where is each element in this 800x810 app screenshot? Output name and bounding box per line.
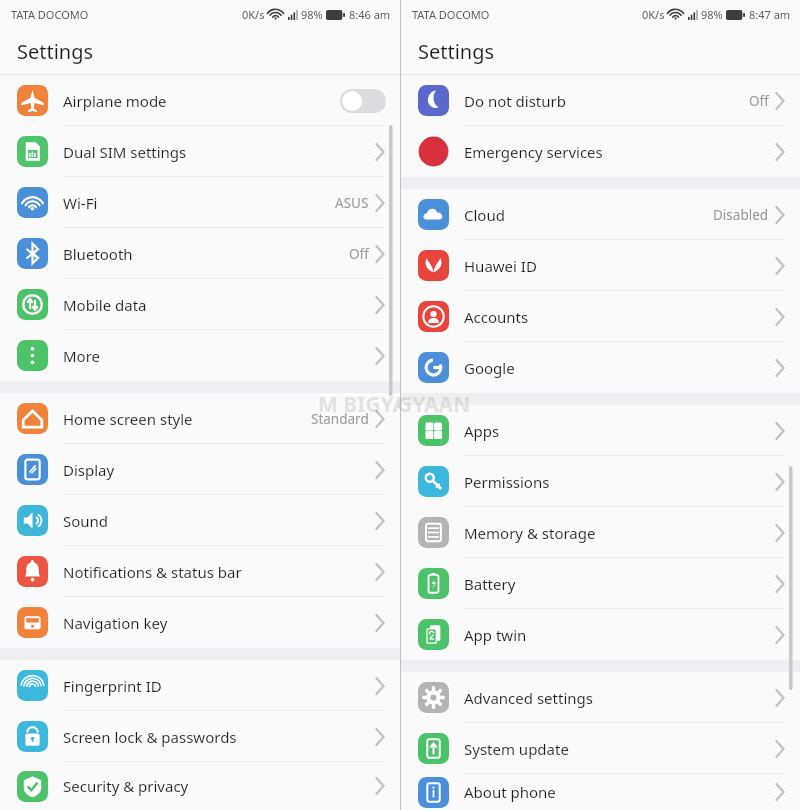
staticText: Notifications & status bar	[63, 562, 242, 582]
button[interactable]: Apps	[401, 405, 800, 456]
staticText: 8:47 am	[749, 7, 791, 22]
staticText: GYAAN	[397, 390, 471, 419]
staticText: TATA DOCOMO	[412, 7, 490, 22]
staticText: 8:46 am	[349, 7, 391, 22]
staticText: Home screen style	[63, 409, 193, 429]
staticText: Cloud	[464, 205, 505, 225]
button[interactable]: Dual SIM settings	[0, 126, 400, 177]
staticText: About phone	[464, 782, 556, 802]
staticText: Wi-Fi	[63, 193, 98, 213]
button[interactable]: Accounts	[401, 291, 800, 342]
staticText: Accounts	[464, 307, 529, 327]
staticText: Disabled	[713, 206, 769, 224]
button[interactable]: Do not disturb	[401, 75, 800, 126]
staticText: Emergency services	[464, 142, 603, 162]
staticText: Huawei ID	[464, 256, 537, 276]
staticText: ASUS	[335, 194, 369, 212]
staticText: 98%	[301, 7, 323, 22]
staticText: App twin	[464, 625, 527, 645]
button[interactable]: Google	[401, 342, 800, 393]
staticText: More	[63, 346, 101, 366]
staticText: Do not disturb	[464, 91, 566, 111]
button[interactable]: Cloud	[401, 189, 800, 240]
button[interactable]: Notifications & status bar	[0, 546, 400, 597]
staticText: Display	[63, 460, 115, 480]
button[interactable]: Navigation key	[0, 597, 400, 648]
button[interactable]: About phone	[401, 774, 800, 810]
button[interactable]: Permissions	[401, 456, 800, 507]
staticText: Mobile data	[63, 295, 147, 315]
button[interactable]: Bluetooth	[0, 228, 400, 279]
staticText: M BIGYAAN	[318, 390, 439, 419]
button[interactable]: Battery	[401, 558, 800, 609]
staticText: Settings	[17, 38, 94, 65]
staticText: Permissions	[464, 472, 550, 492]
staticText: Advanced settings	[464, 688, 593, 708]
button[interactable]: Screen lock & passwords	[0, 711, 400, 762]
staticText: Battery	[464, 574, 516, 594]
staticText: Google	[464, 358, 515, 378]
button[interactable]: Display	[0, 444, 400, 495]
staticText: Apps	[464, 421, 500, 441]
staticText: Security & privacy	[63, 776, 189, 796]
button[interactable]: System update	[401, 723, 800, 774]
button[interactable]: Huawei ID	[401, 240, 800, 291]
staticText: Fingerprint ID	[63, 676, 162, 696]
staticText: 98%	[701, 7, 723, 22]
staticText: Bluetooth	[63, 244, 133, 264]
staticText: Off	[749, 92, 769, 110]
staticText: 0K/s	[642, 7, 665, 22]
staticText: System update	[464, 739, 569, 759]
button[interactable]: Wi-Fi	[0, 177, 400, 228]
button[interactable]: Mobile data	[0, 279, 400, 330]
staticText: Airplane mode	[63, 91, 167, 111]
button[interactable]: Home screen style	[0, 393, 400, 444]
button[interactable]: Advanced settings	[401, 672, 800, 723]
staticText: Navigation key	[63, 613, 168, 633]
staticText: Screen lock & passwords	[63, 727, 237, 747]
staticText: Memory & storage	[464, 523, 596, 543]
button[interactable]: Memory & storage	[401, 507, 800, 558]
button[interactable]: Airplane mode	[0, 75, 400, 126]
button[interactable]: Fingerprint ID	[0, 660, 400, 711]
staticText: Sound	[63, 511, 109, 531]
staticText: Dual SIM settings	[63, 142, 187, 162]
staticText: TATA DOCOMO	[11, 7, 89, 22]
button[interactable]: Security & privacy	[0, 762, 400, 810]
button[interactable]: App twin	[401, 609, 800, 660]
staticText: Standard	[311, 410, 369, 428]
staticText: 0K/s	[242, 7, 265, 22]
staticText: Settings	[418, 38, 495, 65]
button[interactable]: Airplane mode toggle	[340, 89, 386, 113]
button[interactable]: Sound	[0, 495, 400, 546]
button[interactable]: Emergency services	[401, 126, 800, 177]
staticText: Off	[349, 245, 369, 263]
button[interactable]: More	[0, 330, 400, 381]
